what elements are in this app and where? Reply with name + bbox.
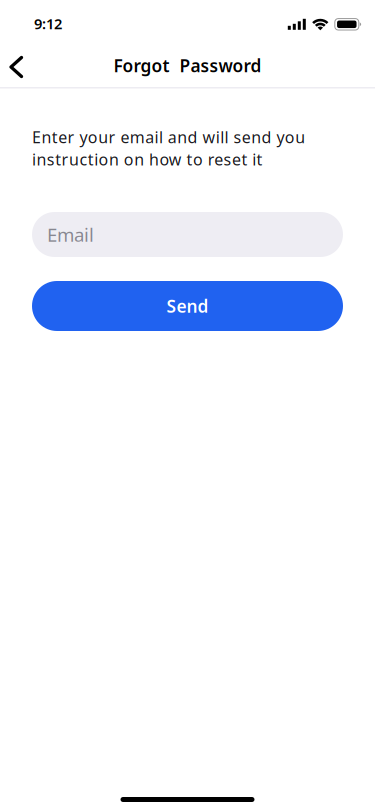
button[interactable]: Email — [32, 212, 343, 257]
staticText: Enter your email and will send you instr… — [32, 126, 305, 170]
staticText: 9:12 — [34, 14, 62, 33]
button[interactable]: Back — [0, 47, 37, 86]
staticText: Forgot Password — [113, 54, 261, 77]
staticText: Email — [47, 222, 94, 247]
button[interactable]: Send — [32, 281, 343, 331]
staticText: Send — [166, 294, 208, 317]
